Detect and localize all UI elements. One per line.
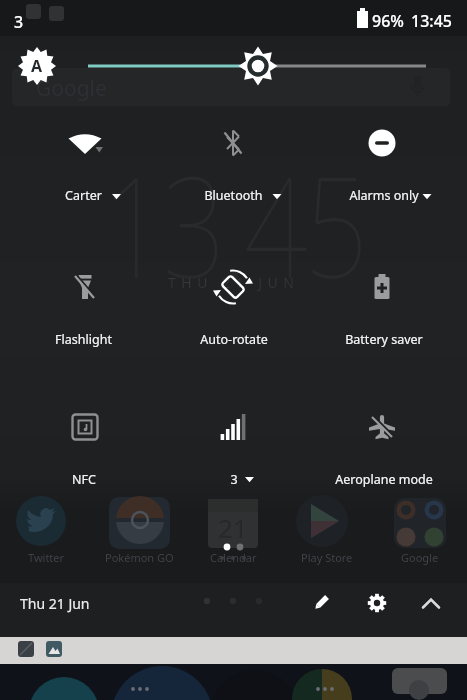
staticText: THU 21 JUN bbox=[168, 273, 300, 292]
button[interactable] bbox=[0, 583, 200, 637]
staticText: NFC bbox=[72, 471, 96, 488]
button[interactable]: Flashlight bbox=[10, 252, 157, 360]
staticText: Alarms only bbox=[349, 187, 419, 204]
staticText: 21 bbox=[218, 510, 248, 545]
button[interactable]: Battery saver bbox=[310, 252, 457, 360]
button[interactable]: Alarms only bbox=[310, 108, 457, 216]
button[interactable] bbox=[306, 590, 338, 622]
staticText: 3 bbox=[230, 471, 238, 488]
staticText: Bluetooth bbox=[204, 187, 263, 204]
staticText: Pokémon GO bbox=[105, 550, 174, 565]
button[interactable]: Bluetooth bbox=[160, 108, 307, 216]
button[interactable] bbox=[361, 590, 393, 622]
staticText: Google bbox=[401, 550, 439, 565]
staticText: 3 bbox=[14, 11, 24, 33]
button[interactable] bbox=[415, 590, 447, 622]
button[interactable]: Aeroplane mode bbox=[310, 392, 457, 500]
staticText: A bbox=[31, 55, 43, 77]
button[interactable]: Carter bbox=[10, 108, 157, 216]
button[interactable] bbox=[16, 46, 436, 86]
staticText: Carter bbox=[65, 187, 102, 204]
button[interactable]: NFC bbox=[10, 392, 157, 500]
staticText: Calendar bbox=[210, 550, 257, 565]
staticText: Aeroplane mode bbox=[335, 471, 433, 488]
staticText: Auto-rotate bbox=[200, 331, 268, 348]
button[interactable]: 3 bbox=[160, 392, 307, 500]
button[interactable]: Auto-rotate bbox=[160, 252, 307, 360]
staticText: Twitter bbox=[28, 550, 65, 565]
staticText: Thu 21 Jun bbox=[20, 594, 90, 613]
staticText: 96% bbox=[372, 10, 404, 32]
staticText: 13:45 bbox=[411, 10, 452, 32]
staticText: Battery saver bbox=[345, 331, 423, 348]
staticText: 13.45 bbox=[102, 128, 365, 319]
staticText: Play Store bbox=[301, 550, 353, 565]
button[interactable] bbox=[0, 637, 467, 664]
staticText: Flashlight bbox=[55, 331, 112, 348]
staticText: Google bbox=[36, 74, 107, 103]
